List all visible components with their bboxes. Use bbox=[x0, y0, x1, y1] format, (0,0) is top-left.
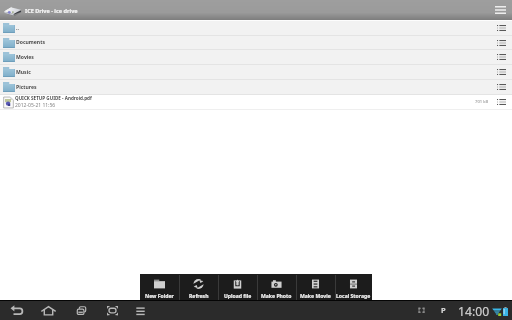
button[interactable]: Recent apps bbox=[71, 301, 91, 320]
button[interactable]: .. bbox=[0, 21, 512, 35]
button[interactable]: Item actions bbox=[495, 51, 507, 63]
button[interactable]: Make Movie bbox=[296, 274, 335, 301]
staticText: Make Movie bbox=[300, 293, 331, 300]
staticText: Refresh bbox=[189, 293, 209, 300]
staticText: Music bbox=[16, 69, 31, 76]
button[interactable]: Screenshot bbox=[102, 301, 122, 320]
button[interactable]: Refresh bbox=[179, 274, 218, 301]
staticText: New Folder bbox=[145, 293, 174, 300]
staticText: P bbox=[441, 305, 446, 315]
button[interactable]: New Folder bbox=[140, 274, 179, 301]
button[interactable]: Documents bbox=[0, 36, 512, 49]
button[interactable]: Item actions bbox=[495, 22, 507, 34]
button[interactable]: Movies bbox=[0, 50, 512, 64]
button[interactable]: Back bbox=[6, 301, 26, 320]
button[interactable]: Home bbox=[38, 301, 58, 320]
button[interactable]: Pictures bbox=[0, 80, 512, 94]
staticText: QUICK SETUP GUIDE - Android.pdf bbox=[15, 95, 92, 101]
staticText: ICE Drive - ice drive bbox=[25, 7, 78, 14]
staticText: Documents bbox=[16, 39, 45, 46]
staticText: Make Photo bbox=[261, 293, 292, 300]
staticText: 2012-05-21 11:56 bbox=[15, 102, 56, 109]
button[interactable]: Item actions bbox=[495, 96, 507, 108]
staticText: 14:00 bbox=[458, 303, 490, 320]
button[interactable]: More options bbox=[490, 0, 510, 20]
button[interactable]: Item actions bbox=[495, 37, 507, 49]
button[interactable]: Item actions bbox=[495, 81, 507, 93]
button[interactable]: Music bbox=[0, 65, 512, 79]
button[interactable]: Expand bbox=[411, 301, 431, 320]
staticText: 701 kB bbox=[475, 99, 489, 105]
button[interactable]: Menu bbox=[130, 301, 150, 320]
staticText: Movies bbox=[16, 54, 34, 61]
button[interactable]: Local Storage bbox=[335, 274, 372, 301]
staticText: Upload file bbox=[224, 293, 252, 300]
button[interactable]: Make Photo bbox=[257, 274, 296, 301]
button[interactable]: Item actions bbox=[495, 66, 507, 78]
button[interactable]: Upload file bbox=[218, 274, 257, 301]
staticText: Pictures bbox=[16, 84, 37, 91]
button[interactable]: Notification bbox=[438, 305, 448, 315]
staticText: Local Storage bbox=[336, 293, 371, 300]
staticText: .. bbox=[16, 25, 19, 32]
button[interactable]: QUICK SETUP GUIDE - Android.pdf bbox=[0, 95, 512, 109]
